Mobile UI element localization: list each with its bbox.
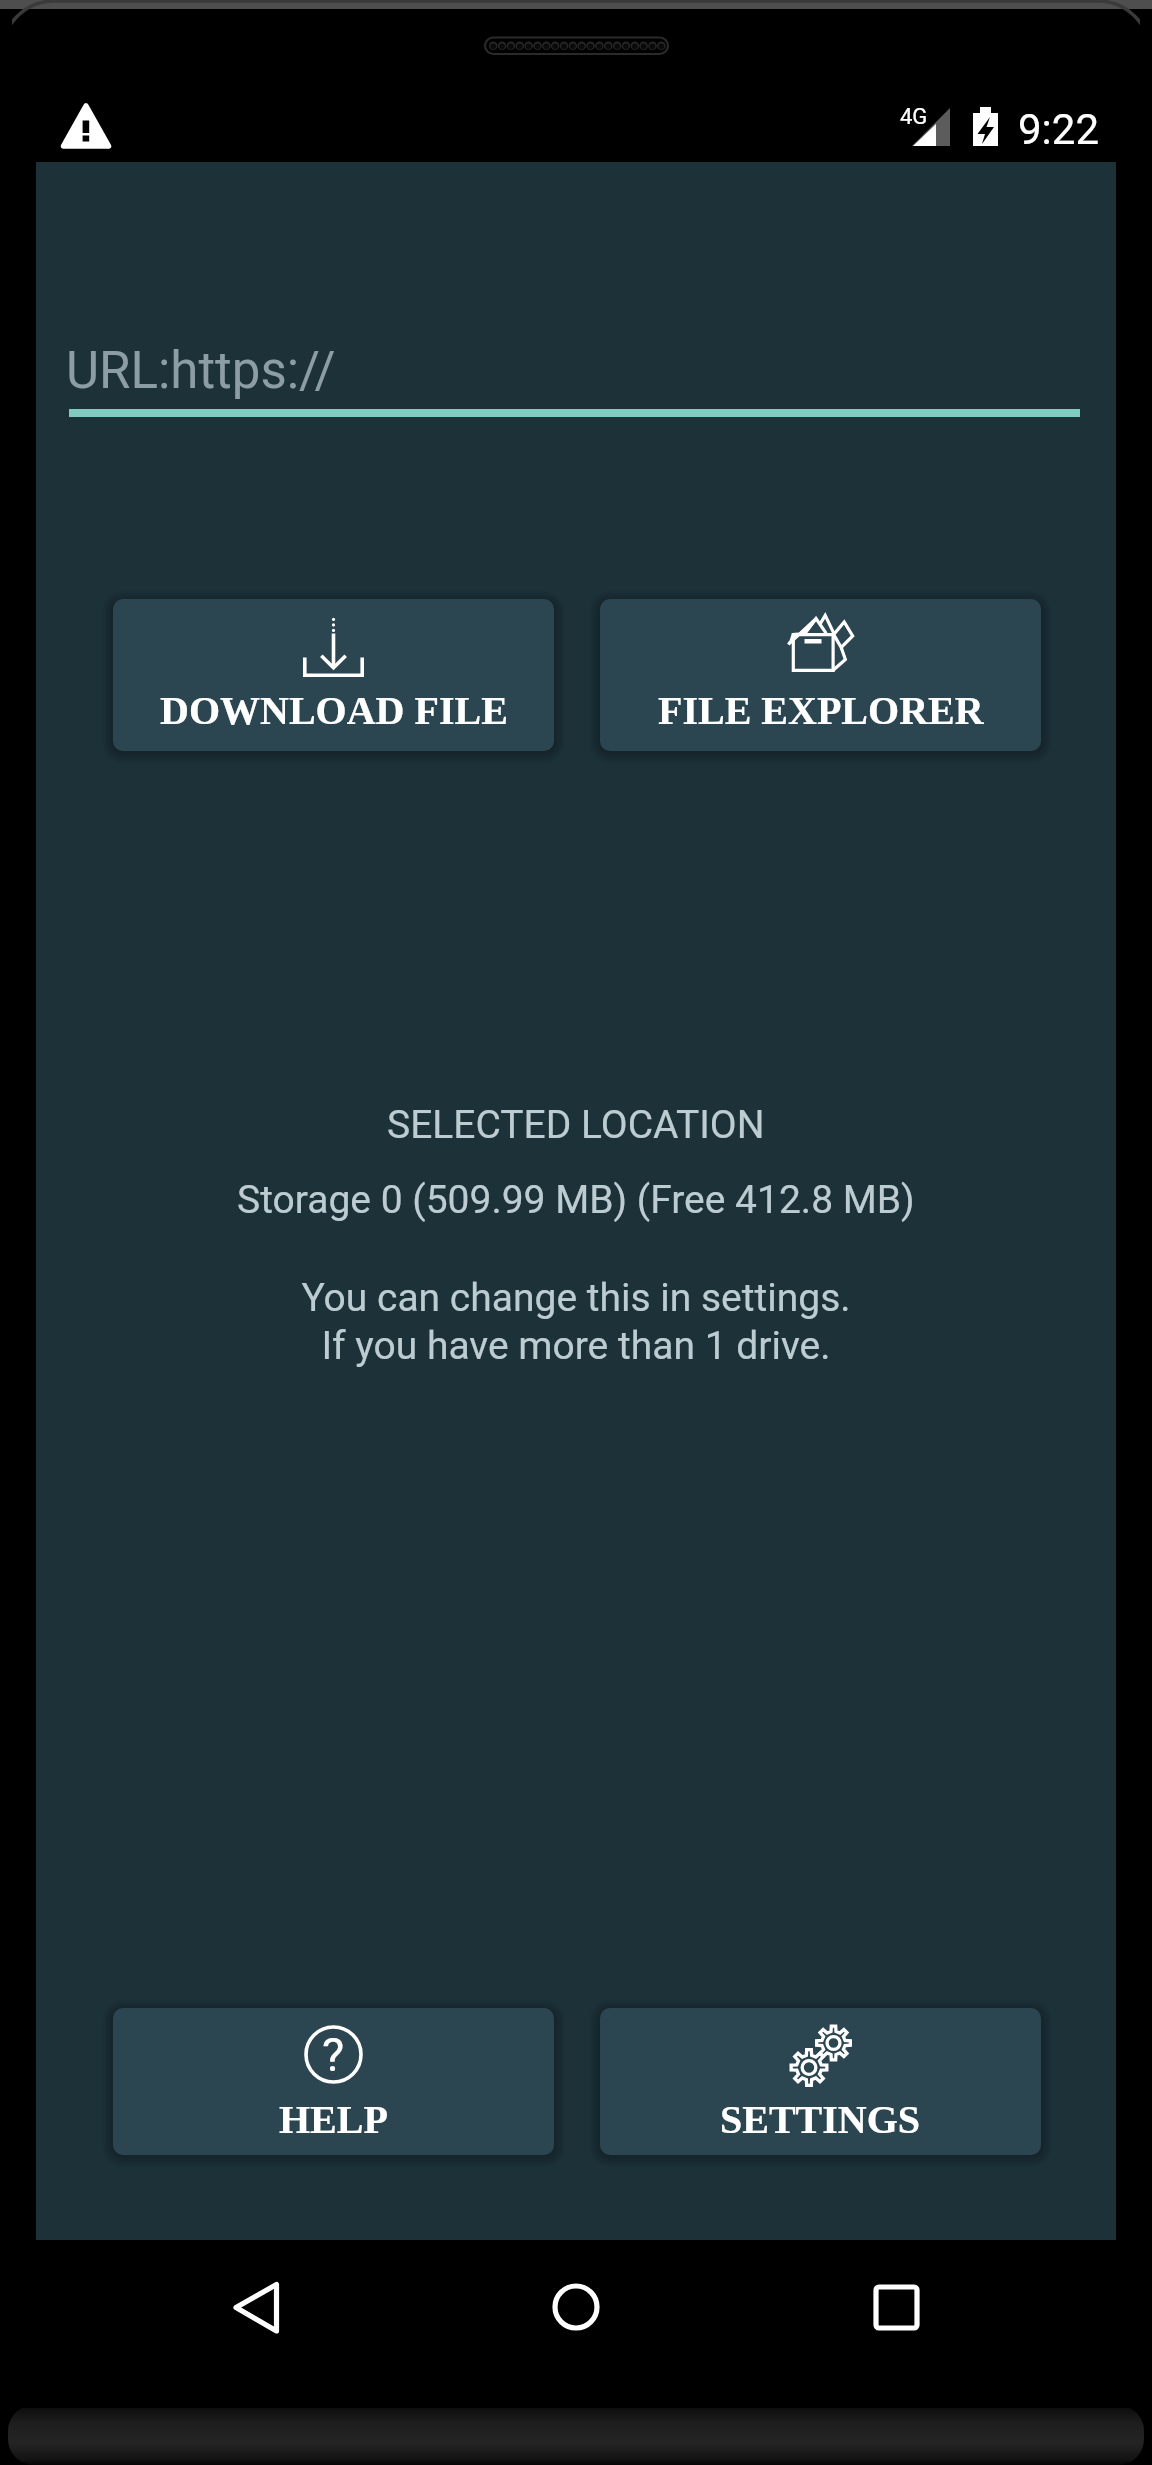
button[interactable]: Settings — [600, 2008, 1041, 2155]
staticText: Storage 0 (509.99 MB) (Free 412.8 MB) — [237, 1177, 915, 1223]
staticText: SELECTED LOCATION — [387, 1102, 765, 1148]
button[interactable]: Recent apps — [836, 2252, 956, 2362]
staticText: URL:https:// — [66, 341, 336, 401]
button[interactable]: URL input field — [66, 337, 1082, 422]
staticText: ? — [322, 2027, 345, 2082]
button[interactable]: Back — [196, 2252, 316, 2362]
button[interactable]: File explorer — [600, 599, 1041, 751]
button[interactable]: Help — [113, 2008, 554, 2155]
staticText: FILE EXPLORER — [658, 688, 984, 732]
staticText: 9:22 — [1018, 105, 1099, 154]
staticText: SETTINGS — [720, 2097, 921, 2141]
staticText: You can change this in settings. If you … — [301, 1275, 851, 1369]
staticText: HELP — [279, 2097, 388, 2141]
button[interactable]: Home — [516, 2252, 636, 2362]
staticText: DOWNLOAD FILE — [160, 688, 508, 732]
staticText: 4G — [900, 104, 928, 130]
button[interactable]: Download file — [113, 599, 554, 751]
